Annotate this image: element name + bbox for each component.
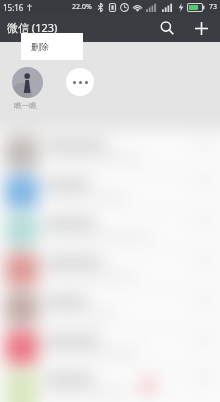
button[interactable]: Profile <box>12 67 43 98</box>
staticText: 15:16 <box>3 2 24 13</box>
button[interactable]: Search <box>155 16 179 40</box>
button[interactable]: More <box>66 68 94 96</box>
staticText: 22.0% <box>72 2 92 12</box>
staticText: 73 <box>209 2 218 12</box>
staticText: 瞧一瞧 <box>14 101 37 110</box>
staticText: 删除 <box>31 41 49 52</box>
button[interactable]: Add <box>189 16 213 40</box>
button[interactable]: 删除 <box>21 33 83 60</box>
staticText: 微信 (123) <box>7 20 58 35</box>
